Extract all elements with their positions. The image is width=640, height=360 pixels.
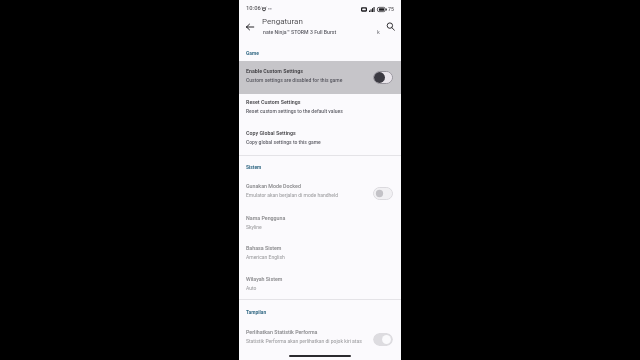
staticText: Emulator akan berjalan di mode handheld [246, 192, 338, 198]
staticText: Pengaturan [262, 17, 303, 26]
staticText: k [377, 29, 380, 36]
button[interactable]: Nama Pengguna [239, 211, 401, 239]
button[interactable]: Off [373, 71, 393, 84]
staticText: Statistik Performa akan perlihatkan di p… [246, 338, 362, 344]
staticText: Auto [246, 285, 257, 291]
staticText: 75 [388, 6, 394, 12]
staticText: Copy global settings to this game [246, 139, 321, 145]
staticText: Reset Custom Settings [246, 99, 301, 105]
staticText: Enable Custom Settings [246, 68, 303, 74]
button[interactable]: Enable Custom Settings [239, 61, 401, 94]
staticText: Copy Global Settings [246, 130, 296, 136]
button[interactable]: Search [383, 19, 397, 33]
staticText: Tampilan [246, 309, 267, 315]
staticText: American English [246, 254, 285, 260]
staticText: Custom settings are disabled for this ga… [246, 77, 343, 83]
staticText: Wilayah Sistem [246, 276, 283, 282]
button[interactable]: Gunakan Mode Docked [239, 179, 401, 207]
button[interactable]: On [373, 333, 393, 346]
button[interactable]: Reset Custom Settings [239, 95, 401, 123]
button[interactable]: Navigate up [243, 20, 257, 34]
button[interactable]: Copy Global Settings [239, 126, 401, 154]
staticText: Perlihatkan Statistik Performa [246, 329, 318, 335]
staticText: Skyline [246, 224, 262, 230]
button[interactable]: Bahasa Sistem [239, 241, 401, 269]
staticText: 10:06 [246, 5, 261, 12]
button[interactable]: Perlihatkan Statistik Performa [239, 325, 401, 353]
button[interactable]: Wilayah Sistem [239, 272, 401, 300]
staticText: Sistem [246, 164, 262, 170]
staticText: Reset custom settings to the default val… [246, 108, 343, 114]
staticText: Game [246, 50, 259, 56]
staticText: Gunakan Mode Docked [246, 183, 301, 189]
staticText: Nama Pengguna [246, 215, 286, 221]
staticText: Bahasa Sistem [246, 245, 282, 251]
staticText: nate Ninja™ STORM 3 Full Burst [263, 29, 337, 35]
button[interactable]: Off [373, 187, 393, 200]
